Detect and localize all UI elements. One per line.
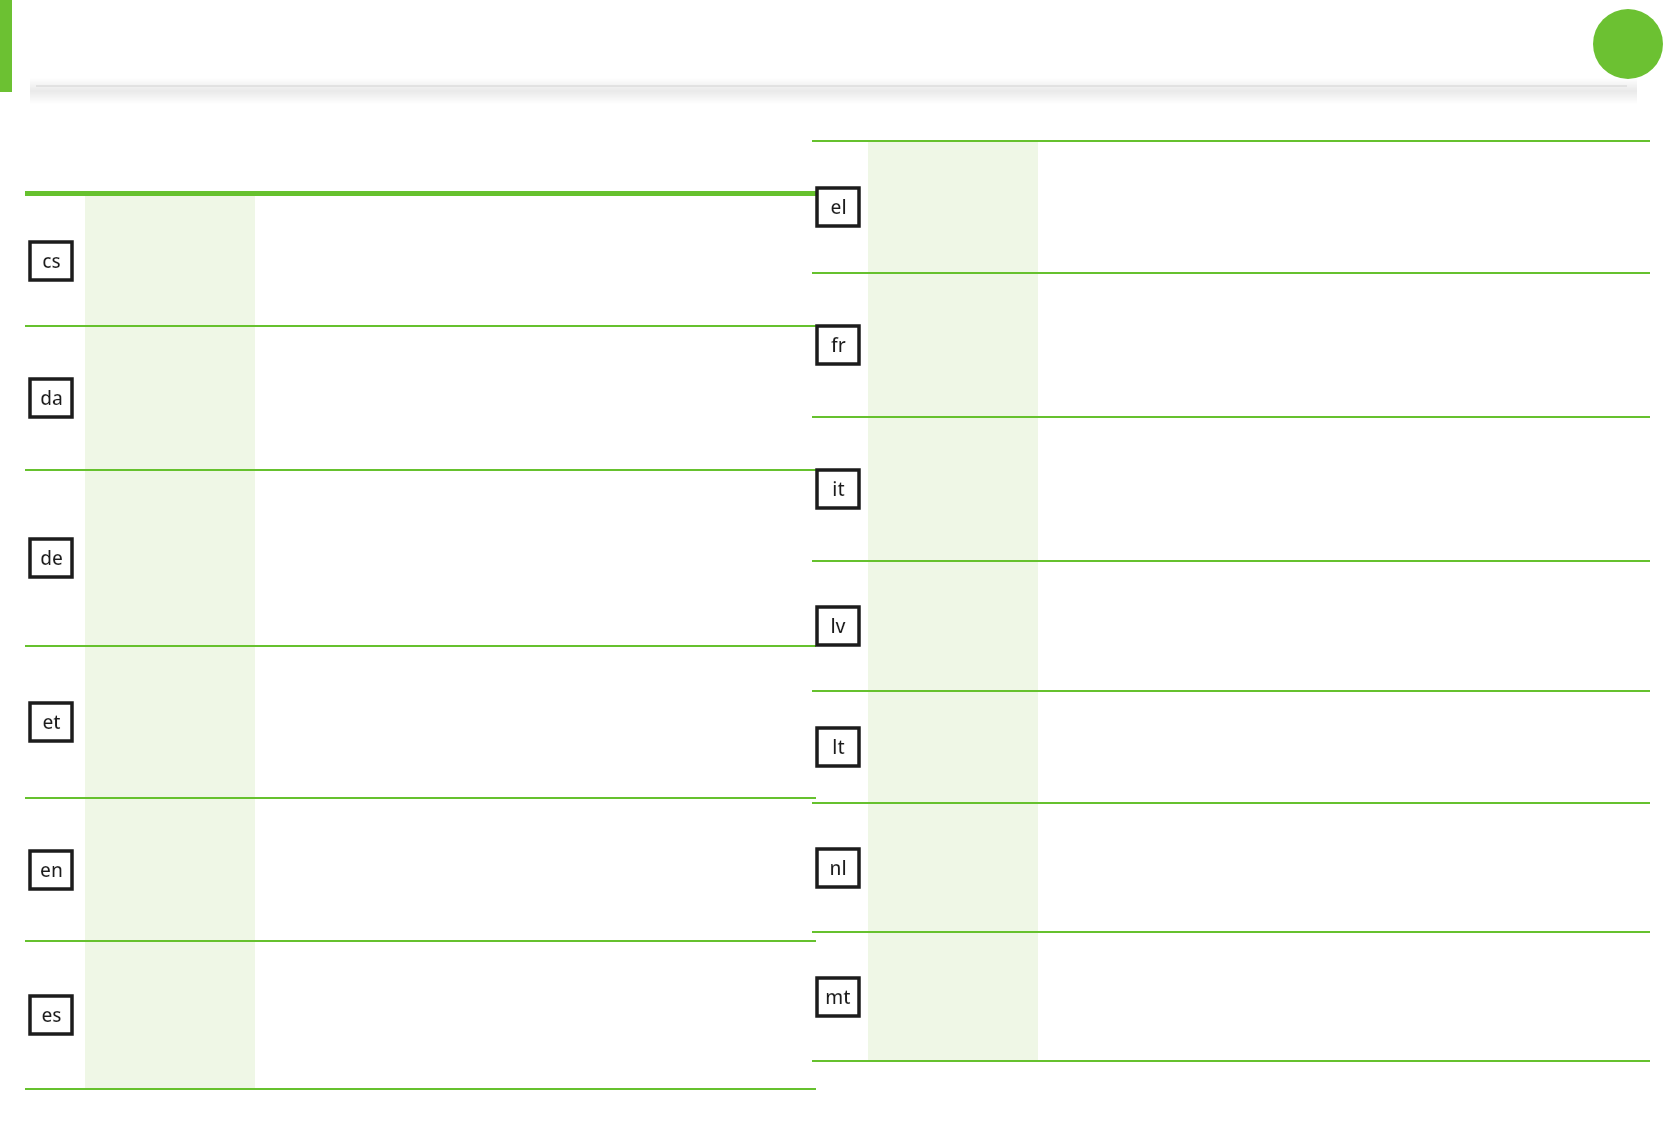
button[interactable]: Language de	[25, 471, 816, 645]
staticText: da	[40, 385, 63, 411]
button[interactable]: Language nl	[812, 804, 1650, 931]
other: Language es	[30, 996, 72, 1034]
other: Language lv	[817, 607, 859, 645]
staticText: es	[41, 1002, 62, 1028]
other: Language de	[30, 539, 72, 577]
staticText: lt	[832, 734, 845, 760]
staticText: lv	[830, 613, 846, 639]
other: Language cs	[30, 242, 72, 280]
other: Language et	[30, 703, 72, 741]
button[interactable]: Language el	[812, 142, 1650, 272]
staticText: mt	[825, 984, 851, 1010]
button[interactable]: Language da	[25, 327, 816, 469]
button[interactable]: Language mt	[812, 933, 1650, 1060]
button[interactable]: Language et	[25, 647, 816, 797]
staticText: de	[40, 545, 63, 571]
button[interactable]: Language cs	[25, 196, 816, 325]
staticText: en	[40, 857, 63, 883]
button[interactable]: Language es	[25, 942, 816, 1088]
other: Language nl	[817, 849, 859, 887]
staticText: fr	[831, 332, 846, 358]
other: Language da	[30, 379, 72, 417]
button[interactable]: Language lt	[812, 692, 1650, 802]
button[interactable]: Language it	[812, 418, 1650, 560]
other: Language lt	[817, 728, 859, 766]
other: Language en	[30, 851, 72, 889]
other: Language el	[817, 188, 859, 226]
staticText: el	[830, 194, 847, 220]
other: Language fr	[817, 326, 859, 364]
staticText: et	[42, 709, 61, 735]
staticText: it	[832, 476, 845, 502]
other: Language mt	[817, 978, 859, 1016]
button[interactable]: Language fr	[812, 274, 1650, 416]
staticText: cs	[42, 248, 61, 274]
other: Language it	[817, 470, 859, 508]
staticText: nl	[829, 855, 847, 881]
button[interactable]: Language lv	[812, 562, 1650, 690]
button[interactable]: Language en	[25, 799, 816, 940]
button[interactable]: Chapter marker	[1593, 9, 1663, 79]
